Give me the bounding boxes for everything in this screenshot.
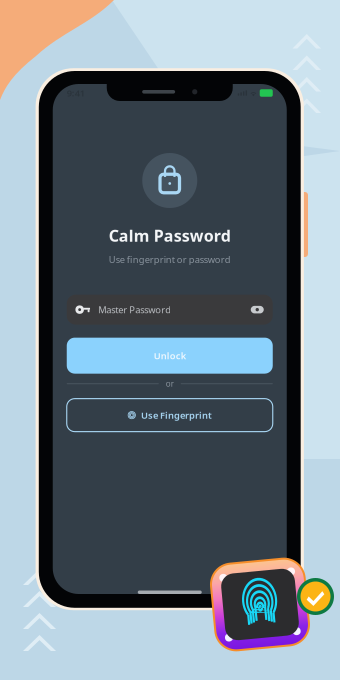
staticText: Use fingerprint or password (109, 253, 231, 266)
staticText: Use Fingerprint (141, 409, 212, 421)
button[interactable]: Show password (250, 305, 265, 314)
staticText: Master Password (98, 303, 171, 316)
staticText: or (166, 378, 174, 389)
button[interactable]: Unlock (67, 338, 273, 374)
staticText: Calm Password (109, 225, 231, 246)
staticText: 9:41 (67, 87, 85, 99)
button[interactable]: Use Fingerprint (67, 399, 273, 432)
staticText: Unlock (154, 349, 186, 362)
